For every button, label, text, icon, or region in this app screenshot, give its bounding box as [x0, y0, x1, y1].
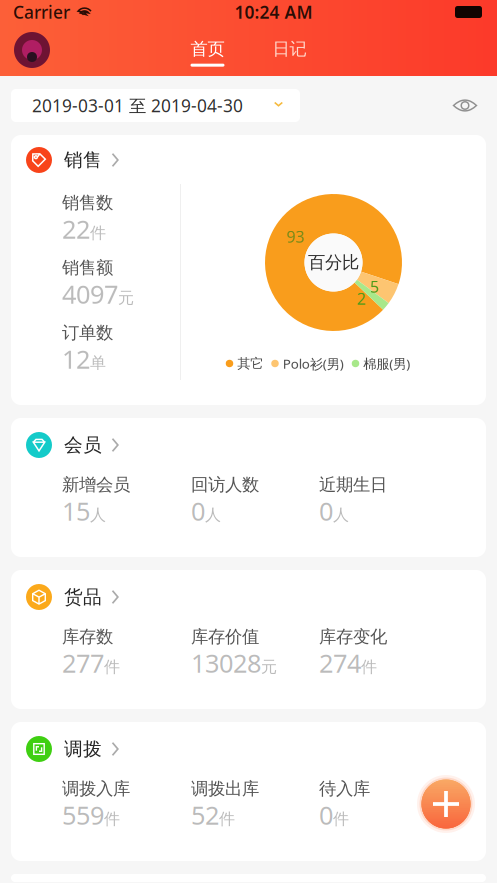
staticText: 件 — [104, 809, 120, 829]
button[interactable]: 会员 — [11, 432, 486, 458]
staticText: 13028 — [191, 646, 261, 680]
staticText: 12 — [62, 342, 90, 376]
staticText: 调拨 — [64, 737, 102, 760]
staticText: 会员 — [64, 433, 102, 456]
staticText: 单 — [90, 353, 106, 373]
staticText: 其它 — [237, 355, 263, 372]
staticText: 277 — [62, 646, 104, 680]
button[interactable]: 调拨 — [11, 736, 486, 762]
staticText: 库存价值 — [191, 626, 259, 647]
staticText: 货品 — [64, 585, 102, 608]
button[interactable]: 销售 — [11, 147, 486, 173]
staticText: 件 — [361, 657, 377, 677]
staticText: 15 — [62, 494, 90, 528]
staticText: 首页 — [190, 38, 224, 60]
staticText: 4097 — [62, 277, 118, 311]
staticText: 5 — [370, 276, 379, 297]
staticText: 订单数 — [62, 322, 113, 343]
staticText: Polo衫(男) — [283, 355, 344, 372]
staticText: 人 — [90, 505, 106, 525]
staticText: 件 — [104, 657, 120, 677]
staticText: 件 — [333, 809, 349, 829]
staticText: 新增会员 — [62, 474, 130, 495]
staticText: 22 — [62, 212, 90, 246]
button[interactable]: 货品 — [11, 584, 486, 610]
button[interactable]: 2019-03-01 至 2019-04-30 — [11, 89, 300, 122]
staticText: 274 — [319, 646, 361, 680]
staticText: 人 — [333, 505, 349, 525]
staticText: 元 — [118, 288, 134, 308]
staticText: 百分比 — [308, 252, 359, 273]
button[interactable]: 日记 — [272, 33, 306, 67]
staticText: 559 — [62, 798, 104, 832]
staticText: 0 — [319, 494, 333, 528]
staticText: 销售 — [64, 148, 102, 171]
staticText: 人 — [205, 505, 221, 525]
button[interactable]: Add — [416, 774, 476, 834]
staticText: 2 — [357, 288, 366, 309]
staticText: 调拨入库 — [62, 778, 130, 799]
staticText: 52 — [191, 798, 219, 832]
staticText: 10:24 AM — [234, 0, 312, 23]
staticText: 库存变化 — [319, 626, 387, 647]
staticText: 库存数 — [62, 626, 113, 647]
staticText: 元 — [261, 657, 277, 677]
staticText: 近期生日 — [319, 474, 387, 495]
staticText: 销售额 — [62, 257, 113, 278]
staticText: 待入库 — [319, 778, 370, 799]
staticText: 调拨出库 — [191, 778, 259, 799]
staticText: 棉服(男) — [363, 355, 410, 372]
staticText: 件 — [90, 223, 106, 243]
button[interactable]: 首页 — [190, 33, 224, 67]
staticText: 0 — [319, 798, 333, 832]
staticText: 0 — [191, 494, 205, 528]
staticText: 2019-03-01 至 2019-04-30 — [32, 94, 243, 117]
staticText: 回访人数 — [191, 474, 259, 495]
staticText: 件 — [219, 809, 235, 829]
staticText: 销售数 — [62, 192, 113, 213]
staticText: 93 — [286, 226, 304, 247]
staticText: Carrier — [13, 0, 70, 23]
button[interactable]: Profile — [14, 32, 50, 68]
button[interactable]: Toggle totals — [450, 90, 480, 120]
staticText: 日记 — [272, 38, 306, 60]
